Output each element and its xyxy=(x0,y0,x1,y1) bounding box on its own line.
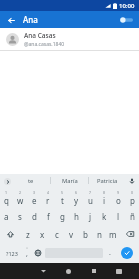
button[interactable]: l xyxy=(111,207,125,225)
button[interactable]: Comma xyxy=(21,243,32,263)
button[interactable]: k xyxy=(97,207,111,225)
staticText: @ana.casas.1840 xyxy=(24,41,65,48)
staticText: 9 xyxy=(117,190,120,195)
staticText: 4 xyxy=(47,190,50,195)
staticText: i xyxy=(103,195,106,206)
button[interactable]: Period xyxy=(104,243,116,263)
staticText: te xyxy=(28,177,34,185)
staticText: 1 xyxy=(5,190,8,195)
staticText: q xyxy=(4,195,9,206)
button[interactable]: 3 xyxy=(27,189,41,207)
staticText: 5 xyxy=(61,190,64,195)
button[interactable]: d xyxy=(27,207,41,225)
staticText: y xyxy=(74,195,79,206)
staticText: . xyxy=(109,248,111,258)
staticText: j xyxy=(89,211,92,222)
staticText: 3 xyxy=(33,190,36,195)
staticText: b xyxy=(83,229,88,240)
staticText: , xyxy=(26,249,28,259)
button[interactable]: z xyxy=(20,225,35,243)
staticText: c xyxy=(55,229,59,240)
staticText: n xyxy=(97,229,102,240)
staticText: Ana xyxy=(23,14,38,25)
button[interactable]: Voice input xyxy=(126,175,137,186)
staticText: Ana Casas xyxy=(24,31,56,40)
button[interactable]: 2 xyxy=(13,189,27,207)
button[interactable]: a xyxy=(0,207,13,225)
staticText: ?123 xyxy=(6,250,18,257)
button[interactable]: m xyxy=(106,225,120,243)
button[interactable]: Expand suggestions xyxy=(2,176,12,186)
button[interactable]: te xyxy=(12,174,50,187)
button[interactable]: Toggle xyxy=(118,14,134,26)
staticText: p xyxy=(130,195,135,206)
staticText: x xyxy=(40,229,45,240)
button[interactable]: 4 xyxy=(41,189,55,207)
staticText: 7 xyxy=(89,190,92,195)
button[interactable]: v xyxy=(64,225,78,243)
button[interactable]: Patricia xyxy=(89,174,126,187)
staticText: Patricia xyxy=(97,177,118,185)
button[interactable]: Ana Casas xyxy=(0,28,139,50)
staticText: 8 xyxy=(103,190,106,195)
staticText: o xyxy=(116,195,121,206)
staticText: ñ xyxy=(130,211,135,222)
staticText: h xyxy=(74,211,79,222)
button[interactable]: Home xyxy=(56,263,81,279)
staticText: d xyxy=(32,211,37,222)
staticText: z xyxy=(26,229,30,240)
staticText: k xyxy=(102,211,107,222)
staticText: v xyxy=(69,229,74,240)
button[interactable]: x xyxy=(35,225,50,243)
staticText: 2 xyxy=(19,190,22,195)
staticText: s xyxy=(18,211,22,222)
button[interactable]: Backspace xyxy=(120,225,139,243)
button[interactable]: Hide keyboard xyxy=(106,263,131,279)
button[interactable]: Shift xyxy=(0,225,20,243)
staticText: María xyxy=(62,177,78,185)
staticText: a xyxy=(4,211,9,222)
staticText: w xyxy=(17,195,24,206)
staticText: 10:00 xyxy=(119,2,135,10)
button[interactable]: María xyxy=(51,174,88,187)
button[interactable]: j xyxy=(83,207,97,225)
staticText: g xyxy=(60,211,65,222)
staticText: m xyxy=(109,229,117,240)
button[interactable]: ?123 xyxy=(2,243,21,263)
button[interactable]: b xyxy=(78,225,92,243)
staticText: 6 xyxy=(75,190,78,195)
staticText: 0 xyxy=(131,190,134,195)
button[interactable]: Back xyxy=(5,14,17,26)
button[interactable]: 9 xyxy=(111,189,125,207)
button[interactable]: 1 xyxy=(0,189,13,207)
button[interactable]: 5 xyxy=(55,189,69,207)
button[interactable]: g xyxy=(55,207,69,225)
staticText: e xyxy=(32,195,37,206)
button[interactable]: Send xyxy=(116,243,137,263)
button[interactable]: 7 xyxy=(83,189,97,207)
button[interactable]: s xyxy=(13,207,27,225)
button[interactable]: Change language xyxy=(32,243,44,263)
staticText: u xyxy=(88,195,93,206)
button[interactable]: ñ xyxy=(125,207,139,225)
button[interactable]: Recents xyxy=(81,263,106,279)
button[interactable]: 6 xyxy=(69,189,83,207)
staticText: l xyxy=(117,211,120,222)
button[interactable]: c xyxy=(50,225,64,243)
button[interactable]: 8 xyxy=(97,189,111,207)
button[interactable]: 0 xyxy=(125,189,139,207)
button[interactable]: Back xyxy=(31,263,56,279)
staticText: r xyxy=(46,195,50,206)
staticText: t xyxy=(61,195,64,206)
button[interactable]: n xyxy=(92,225,106,243)
button[interactable]: h xyxy=(69,207,83,225)
staticText: f xyxy=(47,211,50,222)
button[interactable]: f xyxy=(41,207,55,225)
